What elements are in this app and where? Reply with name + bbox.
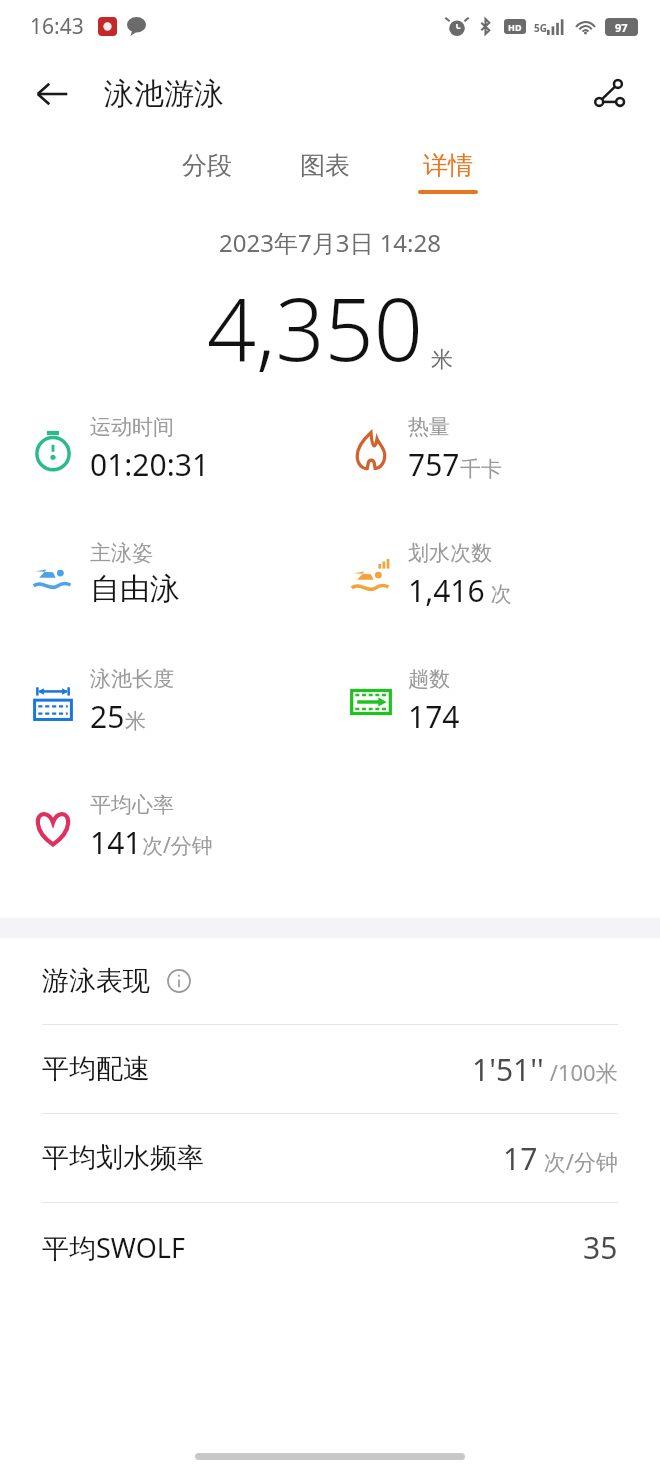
staticText: 自由泳: [90, 570, 180, 608]
button[interactable]: 热量: [348, 414, 660, 485]
button[interactable]: 图表: [290, 146, 360, 198]
staticText: 分段: [182, 150, 232, 181]
staticText: 平均划水频率: [42, 1141, 204, 1175]
staticText: 141: [90, 822, 142, 863]
button[interactable]: 平均心率: [30, 792, 330, 863]
staticText: 米: [125, 708, 146, 734]
button[interactable]: 分段: [172, 146, 242, 198]
staticText: 1'51'': [472, 1049, 544, 1090]
staticText: 25: [90, 696, 125, 737]
staticText: 17: [503, 1138, 538, 1179]
staticText: 1,416: [408, 570, 485, 611]
staticText: 主泳姿: [90, 540, 153, 566]
staticText: 平均配速: [42, 1052, 150, 1086]
button[interactable]: Back: [26, 68, 78, 120]
staticText: 97: [615, 20, 628, 35]
button[interactable]: Info: [162, 964, 196, 998]
button[interactable]: 运动时间: [30, 414, 330, 485]
staticText: 千卡: [460, 456, 502, 482]
staticText: 图表: [300, 150, 350, 181]
staticText: 次: [485, 579, 512, 608]
staticText: 平均心率: [90, 792, 174, 818]
staticText: 划水次数: [408, 540, 492, 566]
staticText: 详情: [423, 150, 473, 181]
staticText: 次/分钟: [538, 1146, 618, 1176]
staticText: 5G: [534, 21, 547, 35]
staticText: 米: [431, 346, 453, 374]
staticText: 运动时间: [90, 414, 174, 440]
staticText: /100米: [544, 1057, 618, 1087]
staticText: 16:43: [30, 12, 84, 41]
button[interactable]: 主泳姿: [30, 540, 330, 608]
staticText: 平均SWOLF: [42, 1229, 185, 1266]
button[interactable]: 平均划水频率: [0, 1114, 660, 1202]
staticText: 泳池长度: [90, 666, 174, 692]
staticText: 2023年7月3日 14:28: [219, 226, 441, 259]
button[interactable]: 泳池长度: [30, 666, 330, 737]
button[interactable]: 详情: [408, 146, 488, 198]
staticText: 01:20:31: [90, 444, 210, 485]
staticText: 次/分钟: [142, 831, 213, 860]
staticText: 游泳表现: [42, 964, 150, 998]
staticText: 174: [408, 696, 460, 737]
button[interactable]: Share: [582, 66, 638, 122]
staticText: 757: [408, 444, 460, 485]
button[interactable]: 平均SWOLF: [0, 1203, 660, 1291]
staticText: 热量: [408, 414, 450, 440]
staticText: 4,350: [207, 269, 423, 386]
button[interactable]: 平均配速: [0, 1025, 660, 1113]
staticText: 35: [583, 1227, 618, 1268]
staticText: 趟数: [408, 666, 450, 692]
staticText: HD: [508, 21, 522, 33]
button[interactable]: 趟数: [348, 666, 660, 737]
staticText: 泳池游泳: [104, 75, 224, 113]
button[interactable]: 划水次数: [348, 540, 660, 611]
